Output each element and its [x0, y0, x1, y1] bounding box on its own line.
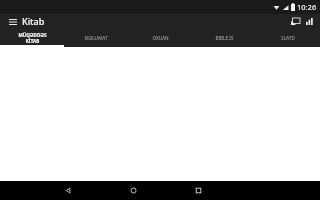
button[interactable]: Open navigation drawer	[6, 15, 19, 28]
button[interactable]: OXUAN	[128, 28, 192, 47]
button[interactable]: Back	[57, 181, 79, 200]
staticText: SLAYD	[281, 35, 295, 41]
button[interactable]: BIBLE.IS	[192, 28, 256, 47]
staticText: MÜQƏDDƏS KİTAB	[18, 32, 47, 44]
staticText: MƏLUMAT	[84, 35, 108, 41]
staticText: Kitab	[22, 15, 45, 27]
staticText: 10:26	[297, 2, 317, 12]
button[interactable]: Cast	[289, 15, 302, 28]
button[interactable]: SLAYD	[256, 28, 320, 47]
button[interactable]: Recent apps	[187, 181, 209, 200]
button[interactable]: MƏLUMAT	[64, 28, 128, 47]
button[interactable]: MÜQƏDDƏS KİTAB	[0, 28, 64, 47]
staticText: OXUAN	[152, 35, 169, 41]
staticText: BIBLE.IS	[215, 35, 234, 41]
button[interactable]: Statistics	[303, 15, 316, 28]
button[interactable]: Home	[122, 181, 144, 200]
